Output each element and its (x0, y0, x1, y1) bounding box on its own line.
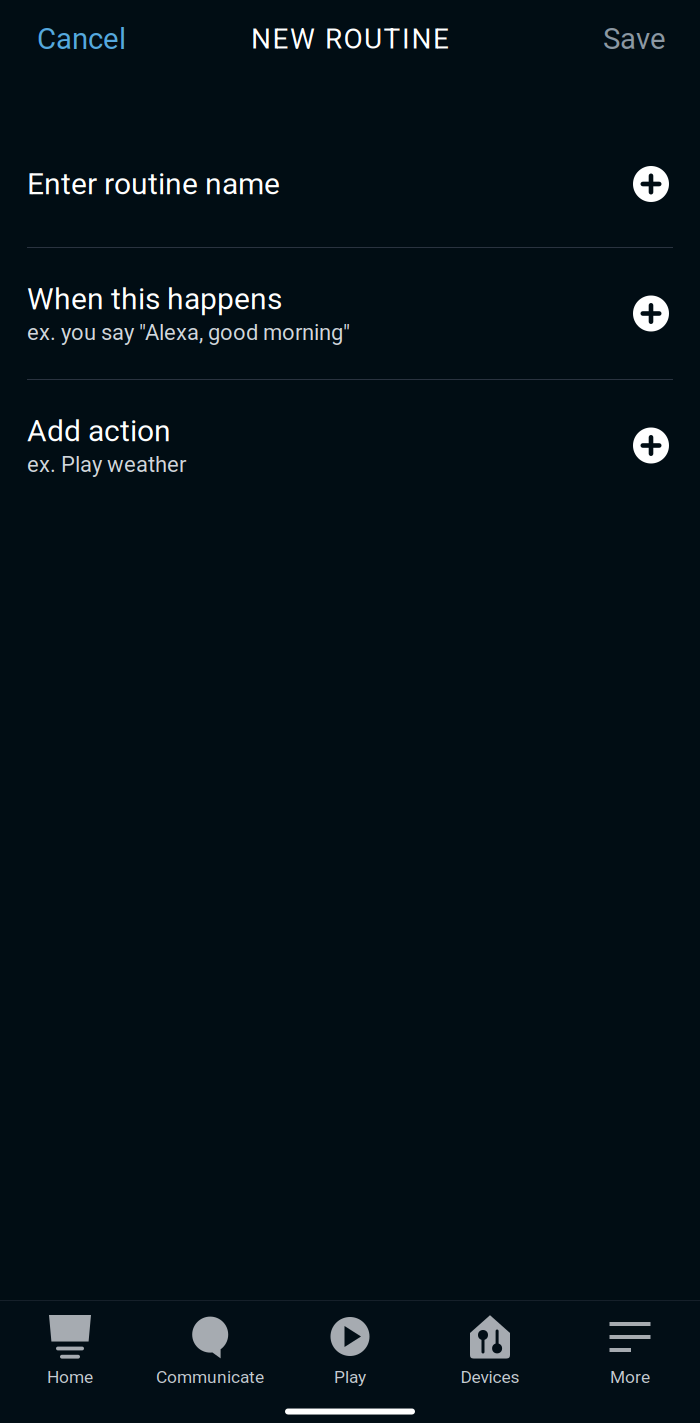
staticText: ex. you say "Alexa, good morning" (27, 320, 350, 345)
staticText: Home (47, 1367, 93, 1387)
staticText: Devices (460, 1367, 519, 1387)
button[interactable]: Add action (0, 380, 700, 511)
button[interactable]: Cancel (0, 0, 177, 78)
staticText: Cancel (37, 22, 126, 56)
staticText: Communicate (156, 1367, 264, 1387)
button[interactable]: Enter routine name (0, 121, 700, 247)
staticText: Enter routine name (27, 166, 280, 202)
button[interactable]: Devices (420, 1301, 560, 1400)
button[interactable]: Save (566, 0, 700, 78)
staticText: ex. Play weather (27, 452, 186, 477)
staticText: Play (334, 1367, 366, 1387)
staticText: NEW ROUTINE (251, 23, 449, 55)
staticText: Add action (27, 413, 171, 449)
button[interactable]: When this happens (0, 248, 700, 379)
staticText: When this happens (27, 281, 282, 317)
button[interactable]: Communicate (140, 1301, 280, 1400)
staticText: More (610, 1367, 650, 1387)
button[interactable]: More (560, 1301, 700, 1400)
button[interactable]: Play (280, 1301, 420, 1400)
staticText: Save (603, 22, 666, 56)
button[interactable]: Home (0, 1301, 140, 1400)
